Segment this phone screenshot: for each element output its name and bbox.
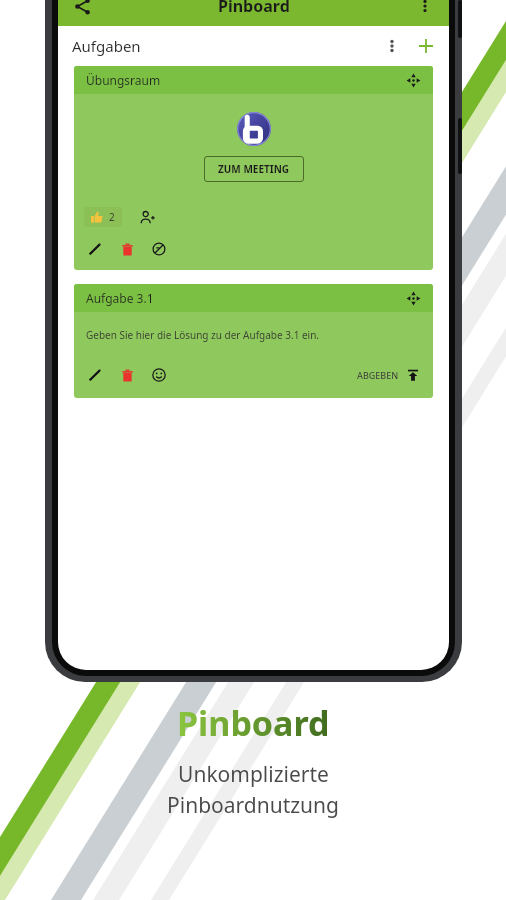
button[interactable]: More options [411, 0, 439, 20]
staticText: 2 [109, 210, 115, 224]
button[interactable]: ABGEBEN [353, 365, 423, 385]
staticText: Aufgaben [72, 36, 141, 56]
staticText: Pinboard [218, 0, 290, 17]
button[interactable]: Share [68, 0, 96, 20]
button[interactable]: Add task [413, 33, 439, 59]
button[interactable]: 2 [84, 207, 122, 227]
button[interactable]: Edit [84, 238, 106, 260]
staticText: Pinboardnutzung [167, 791, 339, 820]
button[interactable]: Übungsraum [74, 66, 433, 270]
button[interactable]: Edit [84, 364, 106, 386]
button[interactable]: ZUM MEETING [204, 156, 304, 182]
button[interactable]: Section options [379, 33, 405, 59]
button[interactable]: Delete [116, 364, 138, 386]
button[interactable]: Feedback [148, 364, 170, 386]
staticText: Unkomplizierte [178, 760, 329, 789]
staticText: Aufgabe 3.1 [86, 290, 154, 306]
staticText: Pinboard [177, 700, 330, 746]
button[interactable]: Move card [403, 288, 423, 308]
button[interactable]: Add person [136, 206, 158, 228]
staticText: Übungsraum [86, 72, 161, 88]
button[interactable]: Move card [403, 70, 423, 90]
staticText: ABGEBEN [357, 369, 399, 381]
button[interactable]: Hide [148, 238, 170, 260]
staticText: Geben Sie hier die Lösung zu der Aufgabe… [86, 328, 320, 342]
button[interactable]: Aufgabe 3.1 [74, 284, 433, 398]
button[interactable]: Delete [116, 238, 138, 260]
staticText: ZUM MEETING [218, 162, 290, 176]
